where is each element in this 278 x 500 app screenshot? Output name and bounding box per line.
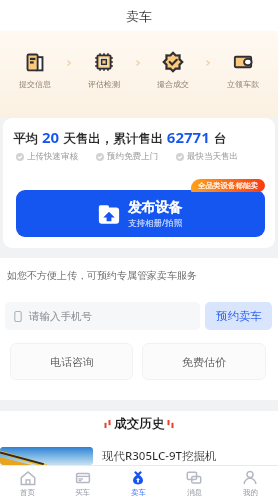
button[interactable]: 现代R305LC-9T挖掘机 xyxy=(0,447,278,465)
button[interactable]: 发布设备 xyxy=(16,190,265,237)
button[interactable]: 提交信息 xyxy=(0,51,69,89)
button[interactable]: 撮合成交 xyxy=(138,51,208,89)
staticText: 评估检测 xyxy=(88,79,120,89)
staticText: 请输入手机号 xyxy=(29,310,92,323)
staticText: 卖车 xyxy=(131,488,146,497)
staticText: 发布设备 xyxy=(128,199,182,216)
staticText: 提交信息 xyxy=(19,79,51,89)
button[interactable]: 预约卖车 xyxy=(205,302,272,330)
staticText: 成交历史 xyxy=(114,416,164,432)
staticText: 免费估价 xyxy=(182,355,226,369)
staticText: 现代R305LC-9T挖掘机 xyxy=(102,448,217,464)
staticText: 撮合成交 xyxy=(157,79,189,89)
staticText: 我的 xyxy=(243,488,258,497)
staticText: 立领车款 xyxy=(227,79,259,89)
staticText: 预约卖车 xyxy=(216,309,262,323)
button[interactable]: 立领车款 xyxy=(208,51,278,89)
button[interactable]: 我的 xyxy=(222,466,278,500)
staticText: 消息 xyxy=(187,488,202,497)
staticText: 买车 xyxy=(75,488,90,497)
staticText: 电话咨询 xyxy=(50,355,94,369)
staticText: 如您不方便上传，可预约专属管家卖车服务 xyxy=(7,269,197,282)
button[interactable]: 电话咨询 xyxy=(10,343,133,380)
button[interactable]: 买车 xyxy=(55,466,110,500)
staticText: 全品类设备都能卖 xyxy=(198,181,258,190)
staticText: 支持相册/拍照 xyxy=(128,217,183,229)
button[interactable]: 评估检测 xyxy=(69,51,138,89)
button[interactable]: 首页 xyxy=(0,466,55,500)
staticText: 预约免费上门 xyxy=(107,151,158,162)
staticText: 首页 xyxy=(20,488,35,497)
button[interactable]: 请输入手机号 xyxy=(5,302,200,330)
button[interactable]: 免费估价 xyxy=(142,343,266,380)
staticText: 最快当天售出 xyxy=(187,151,238,162)
staticText: 平均 20 天售出，累计售出 62771 台 xyxy=(13,127,227,147)
button[interactable]: 卖车 xyxy=(110,466,166,500)
staticText: 上传快速审核 xyxy=(27,151,78,162)
staticText: 卖车 xyxy=(126,8,152,24)
button[interactable]: 消息 xyxy=(166,466,222,500)
